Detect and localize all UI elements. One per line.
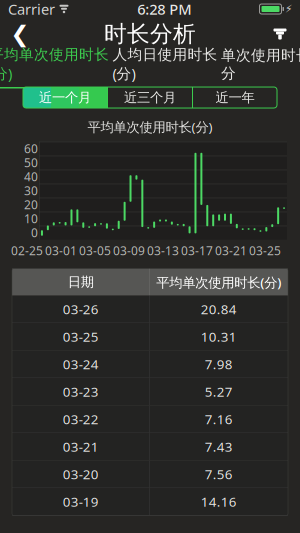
staticText: 50 (24, 155, 38, 171)
button[interactable]: 平均单次使用时长(分) (0, 39, 109, 88)
button[interactable]: 近一个月 (23, 87, 107, 108)
staticText: Carrier (8, 0, 55, 19)
staticText: ❮ (10, 21, 29, 47)
button[interactable]: Filter (260, 18, 300, 50)
staticText: 40 (24, 169, 38, 185)
staticText: 30 (24, 183, 38, 199)
staticText: 60 (24, 141, 38, 157)
staticText: 近一个月 (39, 89, 91, 106)
staticText: 03-22 (63, 410, 99, 428)
button[interactable]: 单次使用时长分 (221, 40, 300, 88)
staticText: 7.98 (205, 355, 233, 373)
staticText: 日期 (68, 274, 94, 290)
staticText: 14.16 (201, 493, 237, 510)
staticText: 近三个月 (124, 89, 176, 106)
staticText: 03-20 (63, 465, 99, 483)
staticText: 平均单次使用时长(分) (156, 273, 281, 291)
staticText: 近一年 (215, 89, 254, 106)
staticText: 7.43 (205, 438, 233, 455)
staticText: 03-09 (113, 243, 145, 259)
staticText: 人均日使用时长(分) (112, 45, 217, 83)
button[interactable]: Back (0, 18, 40, 50)
staticText: 03-26 (63, 300, 99, 318)
staticText: 10 (24, 211, 38, 227)
staticText: 03-21 (215, 243, 247, 259)
staticText: 03-23 (63, 383, 99, 400)
staticText: 平均单次使用时长(分) (87, 118, 212, 136)
staticText: 5.27 (205, 383, 233, 400)
staticText: 10.31 (201, 328, 237, 345)
staticText: 单次使用时长分 (221, 46, 300, 82)
staticText: 03-19 (63, 493, 99, 510)
staticText: 03-24 (63, 355, 99, 373)
staticText: 02-25 (11, 243, 43, 259)
staticText: 0 (31, 225, 38, 241)
staticText: 03-05 (79, 243, 111, 259)
button[interactable]: 近一年 (193, 87, 277, 108)
staticText: 03-25 (63, 328, 99, 345)
staticText: 03-13 (147, 243, 179, 259)
staticText: 时长分析 (104, 20, 196, 48)
staticText: ⚡︎ (285, 3, 292, 15)
button[interactable]: 近三个月 (108, 87, 192, 108)
staticText: 03-01 (45, 243, 77, 259)
staticText: 03-21 (63, 438, 99, 455)
staticText: 7.16 (205, 410, 233, 428)
staticText: 03-25 (249, 243, 281, 259)
button[interactable]: 人均日使用时长(分) (109, 39, 221, 88)
staticText: 20 (24, 197, 38, 213)
staticText: 7.56 (205, 465, 233, 483)
staticText: 平均单次使用时长(分) (0, 45, 109, 83)
staticText: 03-17 (181, 243, 213, 259)
staticText: 6:28 PM (137, 0, 191, 19)
staticText: 20.84 (201, 300, 237, 318)
